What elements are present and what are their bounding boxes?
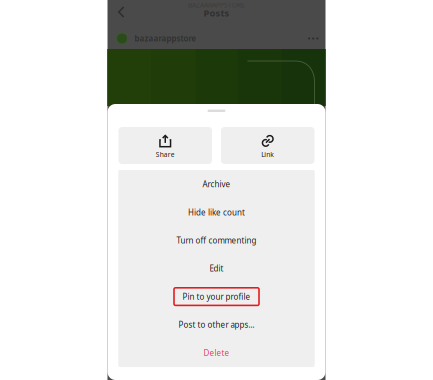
button[interactable]: Pin to your profile — [118, 283, 314, 311]
staticText: Turn off commenting — [176, 235, 256, 246]
button[interactable]: Archive — [118, 170, 314, 198]
button[interactable]: Edit — [118, 254, 314, 283]
button[interactable]: Hide like count — [118, 198, 314, 226]
staticText: Share — [156, 150, 175, 159]
staticText: Archive — [202, 179, 230, 189]
staticText: Edit — [209, 263, 223, 274]
staticText: Hide like count — [188, 207, 245, 218]
button[interactable]: Delete — [118, 339, 314, 367]
button[interactable]: Link — [221, 127, 314, 164]
staticText: Delete — [203, 347, 229, 358]
staticText: Pin to your profile — [182, 291, 250, 302]
staticText: Post to other apps... — [178, 319, 254, 330]
staticText: bazaarappstore — [134, 33, 196, 44]
button[interactable]: Post to other apps... — [118, 311, 314, 339]
staticText: Link — [261, 150, 274, 159]
button[interactable]: Turn off commenting — [118, 226, 314, 254]
button[interactable]: More options — [306, 29, 320, 47]
staticText: Posts — [203, 7, 229, 19]
button[interactable]: Back — [111, 1, 131, 23]
button[interactable]: Share — [118, 127, 212, 164]
staticText: BAZAARAPPSTORE — [188, 1, 245, 9]
